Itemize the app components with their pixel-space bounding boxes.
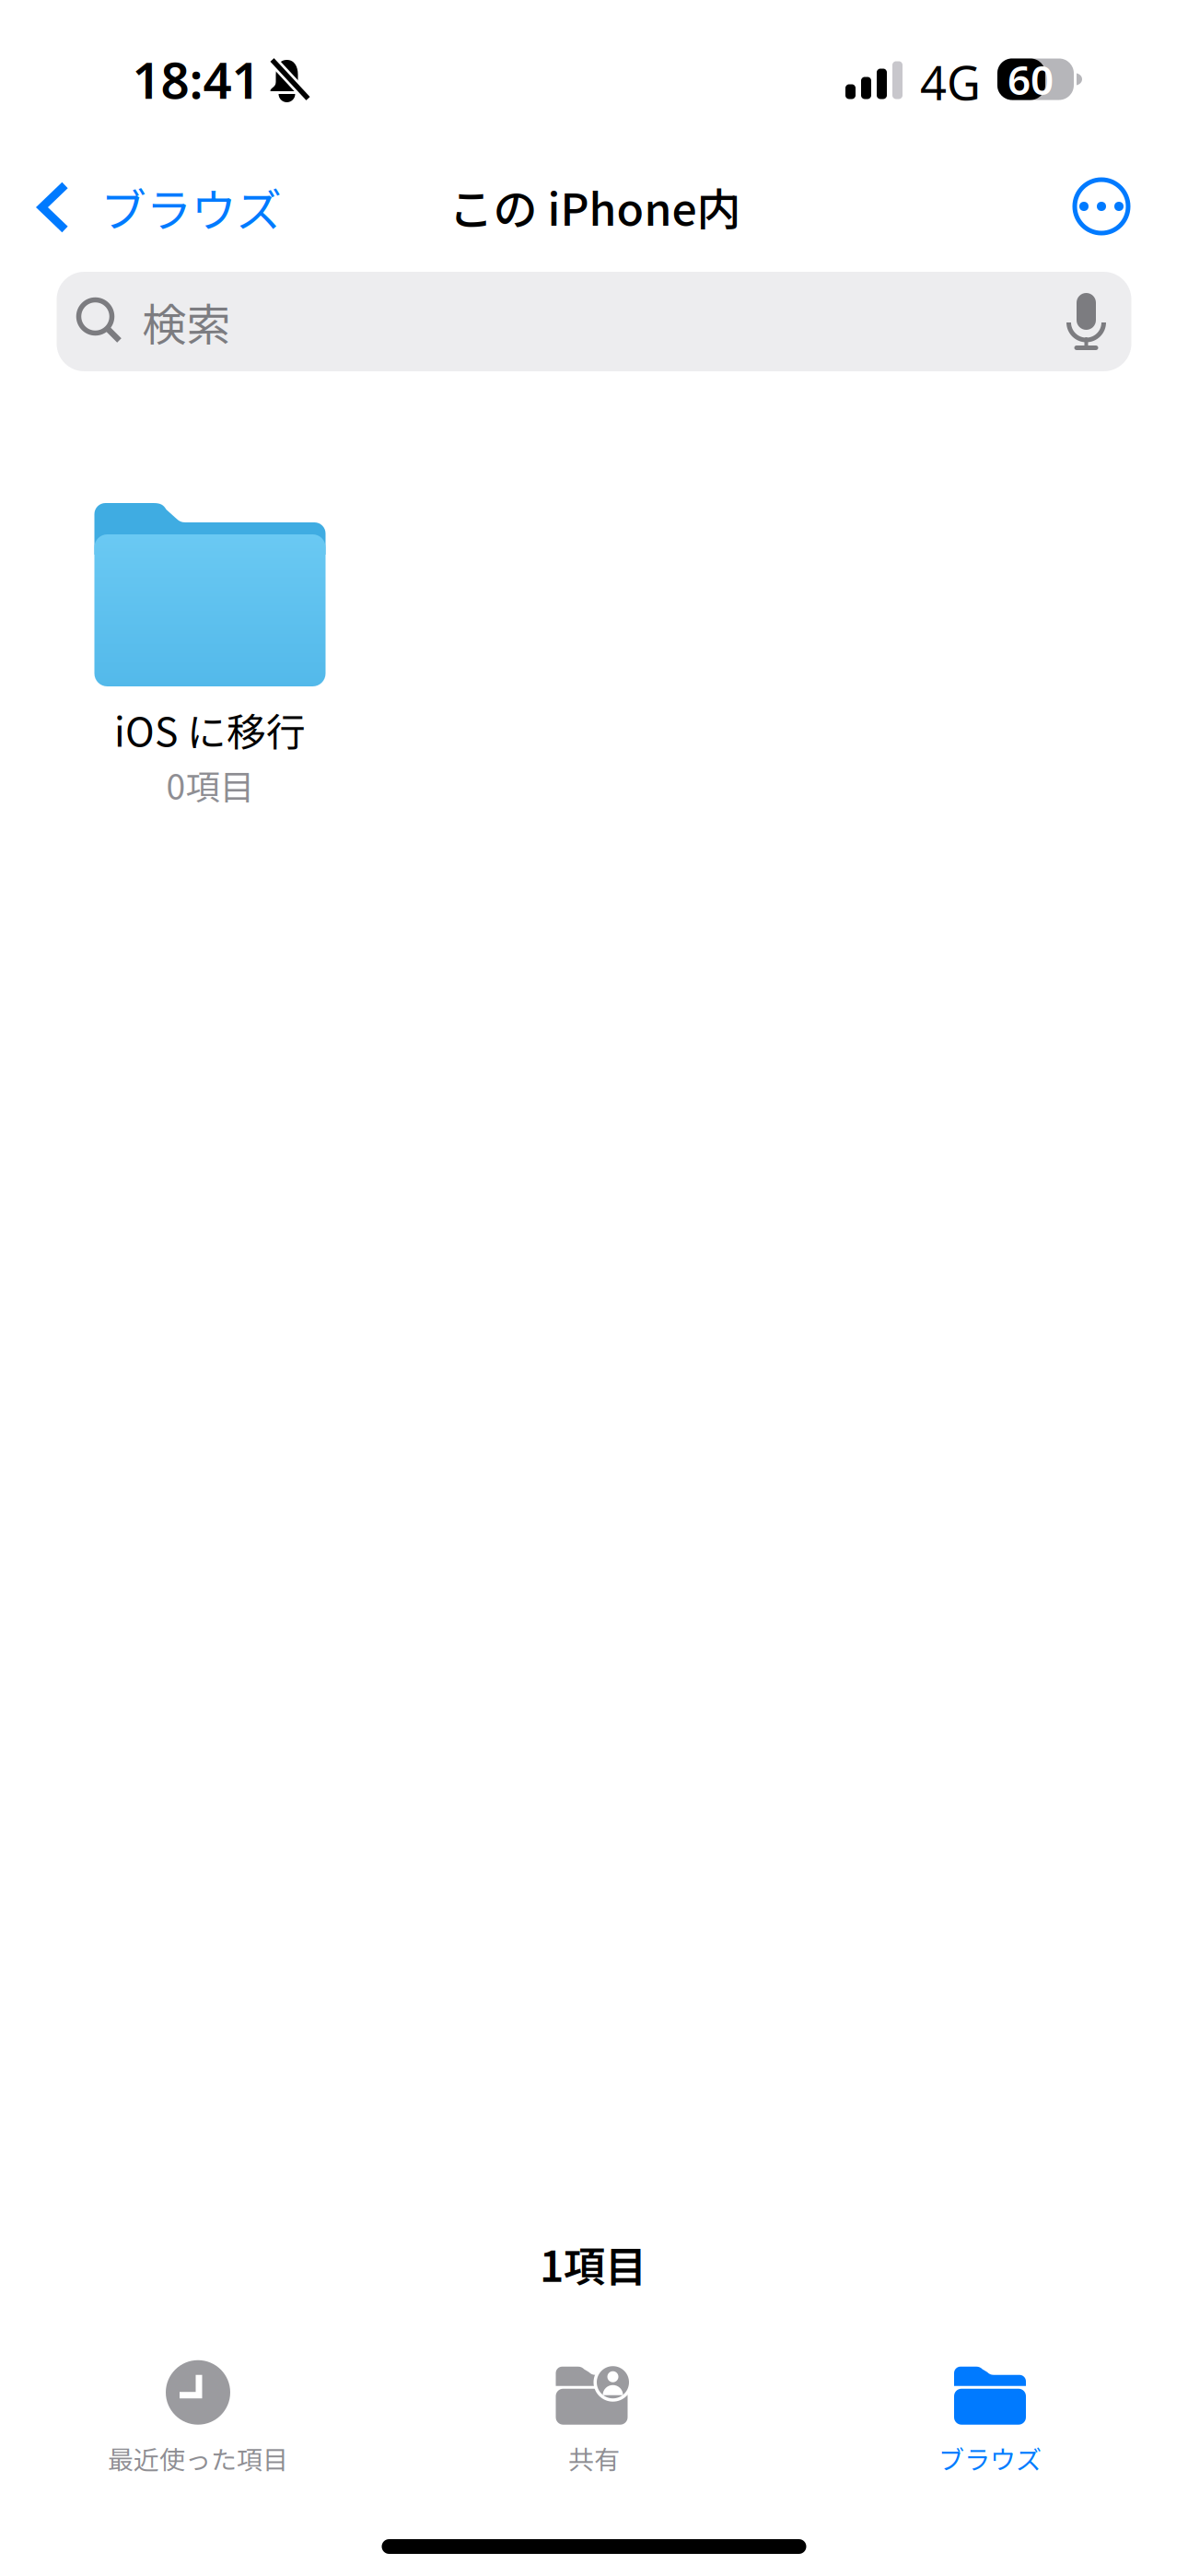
button[interactable]: 共有 <box>396 2356 792 2477</box>
staticText: ブラウズ <box>101 174 281 240</box>
staticText: 最近使った項目 <box>108 2439 288 2477</box>
staticText: 60 <box>1007 52 1054 106</box>
staticText: ブラウズ <box>938 2439 1042 2477</box>
staticText: 1項目 <box>540 2233 646 2294</box>
button[interactable]: iOS に移行 <box>58 503 362 816</box>
staticText: iOS に移行 <box>114 701 306 758</box>
button[interactable]: 最近使った項目 <box>0 2356 396 2477</box>
staticText: 検索 <box>142 289 231 354</box>
staticText: この iPhone内 <box>449 174 741 238</box>
button[interactable]: 検索 <box>57 272 1131 371</box>
button[interactable]: ブラウズ <box>792 2356 1188 2477</box>
staticText: 共有 <box>568 2439 620 2477</box>
button[interactable]: ブラウズ <box>19 158 300 257</box>
staticText: 0項目 <box>166 760 254 810</box>
staticText: 4G <box>920 51 981 113</box>
button[interactable]: More <box>1059 164 1144 249</box>
staticText: 18:41 <box>132 46 260 113</box>
